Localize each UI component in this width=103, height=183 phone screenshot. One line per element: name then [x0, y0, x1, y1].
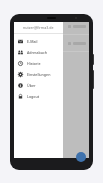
button[interactable]: Über [14, 80, 63, 91]
button[interactable]: Logout [14, 91, 63, 102]
button[interactable]: E-Mail [14, 36, 63, 47]
staticText: nutzer@firma3.de [23, 25, 54, 30]
button[interactable]: Einstellungen [14, 69, 63, 80]
staticText: Historie [27, 61, 41, 66]
staticText: Über [27, 83, 36, 88]
button[interactable]: nutzer@firma3.de [14, 22, 63, 33]
staticText: E-Mail [27, 39, 38, 44]
staticText: Logout [27, 94, 40, 99]
button[interactable]: Neue Nachricht erstellen [76, 152, 86, 162]
button[interactable]: Historie [14, 58, 63, 69]
button[interactable]: Adressbuch [14, 47, 63, 58]
staticText: Adressbuch [27, 50, 48, 55]
staticText: Einstellungen [27, 72, 51, 77]
